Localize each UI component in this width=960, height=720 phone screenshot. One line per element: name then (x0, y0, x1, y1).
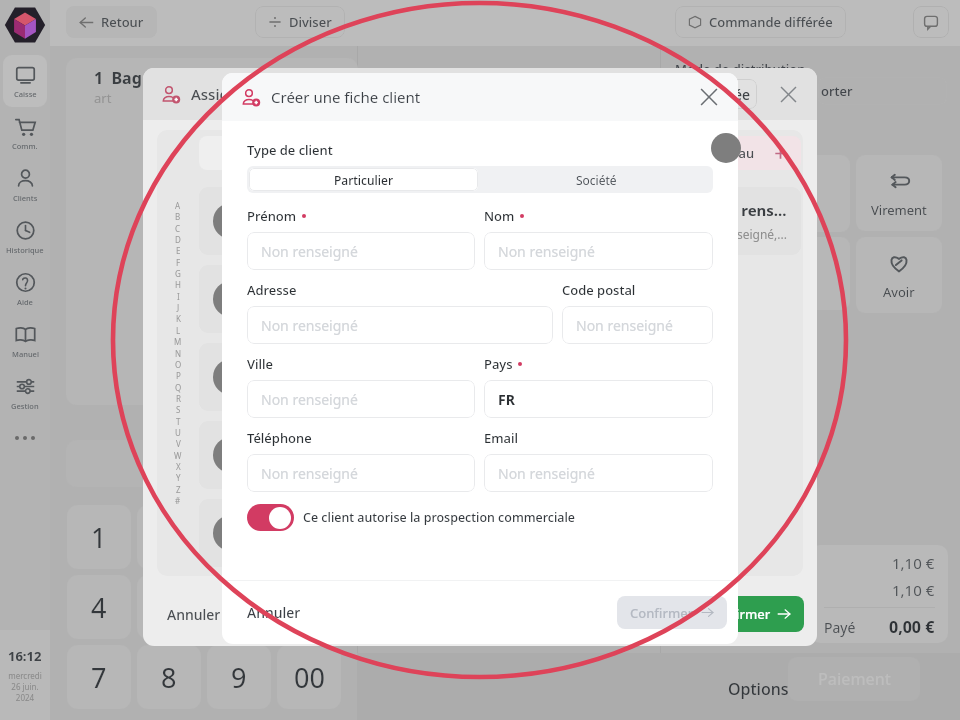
staticText: Comm. (12, 141, 38, 151)
button[interactable]: Annuler (239, 595, 309, 630)
staticText: U (175, 427, 181, 438)
staticText: Caisse (14, 89, 37, 99)
staticText: Assigner un client (191, 84, 319, 104)
staticText: C (175, 223, 181, 234)
staticText: Non renseigné (261, 464, 358, 483)
button[interactable]: Messages (913, 6, 949, 38)
staticText: Confirmer (707, 605, 771, 623)
staticText: renseigné,... (310, 460, 379, 476)
button[interactable]: Historique (3, 211, 47, 263)
button[interactable]: Non rens... (199, 187, 393, 255)
staticText: Email (484, 429, 519, 447)
button[interactable]: 1 (67, 505, 131, 569)
button[interactable] (199, 136, 676, 170)
button[interactable]: Non renseigné (247, 306, 553, 344)
staticText: Manuel (12, 349, 39, 359)
button[interactable]: t nt (764, 155, 850, 232)
button[interactable]: 8 (137, 645, 201, 709)
button[interactable]: Non renseigné (562, 306, 713, 344)
button[interactable]: Non rens... (199, 421, 393, 489)
button[interactable]: C (277, 505, 341, 569)
staticText: # (175, 495, 181, 506)
staticText: Ce client autorise la prospection commer… (303, 509, 575, 526)
button[interactable]: Fermer (771, 77, 805, 111)
button[interactable] (672, 77, 812, 105)
button[interactable]: Clients (3, 159, 47, 211)
staticText: V (176, 438, 181, 449)
staticText: Y (176, 472, 181, 483)
button[interactable]: Société (480, 166, 713, 193)
button[interactable]: Non renseigné (484, 232, 713, 270)
staticText: mercredi 26 juin. 2024 (8, 670, 42, 703)
button[interactable]: Diviser (255, 6, 345, 38)
staticText: 0,00 € (889, 616, 935, 638)
staticText: I (177, 291, 180, 302)
staticText: D (175, 234, 181, 245)
staticText: Clients (13, 193, 38, 203)
staticText: Non rens... (298, 434, 379, 454)
button[interactable]: + (277, 575, 341, 639)
button[interactable]: Fermer (691, 79, 727, 115)
button[interactable]: Nouveau (686, 136, 801, 170)
button[interactable]: 3 (207, 505, 271, 569)
button[interactable]: Particulier (249, 168, 478, 191)
staticText: Créer une fiche client (271, 87, 421, 107)
button[interactable]: FR (484, 380, 713, 418)
button[interactable]: Virement (856, 155, 942, 231)
button[interactable]: Commande différée (675, 6, 846, 38)
button[interactable]: Autoriser la prospection commerciale (247, 504, 575, 531)
button[interactable]: Autoriser la prospection commerciale (247, 504, 294, 531)
button[interactable]: Non renseigné (484, 454, 713, 492)
button[interactable]: Non rens... (199, 265, 393, 333)
staticText: Non renseigné (261, 242, 358, 261)
button[interactable]: Confirmer (617, 596, 727, 629)
button[interactable]: Avoir (856, 237, 942, 313)
button[interactable]: Caisse (3, 55, 47, 107)
button[interactable]: Plus (15, 431, 35, 445)
staticText: Type de client (247, 141, 333, 159)
button[interactable]: Annuler (159, 597, 229, 632)
button[interactable]: Aide (3, 263, 47, 315)
staticText: 1,10 € (892, 580, 935, 600)
button[interactable]: 9 (207, 645, 271, 709)
button[interactable]: 2 (137, 505, 201, 569)
button[interactable]: Gestion (3, 367, 47, 419)
button[interactable]: Retour (66, 6, 157, 38)
button[interactable]: Non renseigné (247, 232, 475, 270)
staticText: Non renseigné (261, 390, 358, 409)
staticText: X (176, 461, 181, 472)
button[interactable]: Non rens... (199, 499, 393, 567)
staticText: Non rens... (298, 512, 379, 532)
button[interactable]: 5 (137, 575, 201, 639)
button[interactable]: Non rens... (608, 187, 801, 255)
button[interactable]: Comm. (3, 107, 47, 159)
button[interactable]: Non rens... (199, 343, 393, 411)
staticText: Aide (17, 297, 33, 307)
button[interactable]: orter (818, 77, 947, 105)
staticText: 00 (294, 659, 325, 696)
button[interactable]: en r (764, 237, 850, 310)
staticText: Historique (6, 245, 44, 255)
button[interactable]: 00 (277, 645, 341, 709)
staticText: B (175, 211, 181, 222)
button[interactable]: Confirmer (694, 596, 804, 632)
button[interactable]: Options (718, 668, 799, 710)
button[interactable]: 6 (207, 575, 271, 639)
button[interactable]: Non renseigné (247, 454, 475, 492)
staticText: Ville (247, 355, 273, 373)
button[interactable]: Non rens... (404, 187, 597, 255)
button[interactable]: Non renseigné (247, 380, 475, 418)
button[interactable]: ée (637, 79, 757, 109)
button[interactable]: Manuel (3, 315, 47, 367)
button[interactable]: 7 (67, 645, 131, 709)
button[interactable]: 4 (67, 575, 131, 639)
button[interactable]: Logo (3, 3, 47, 47)
staticText: H (175, 279, 181, 290)
staticText: P (176, 370, 181, 381)
staticText: ée (734, 85, 751, 104)
staticText: C (300, 519, 318, 556)
